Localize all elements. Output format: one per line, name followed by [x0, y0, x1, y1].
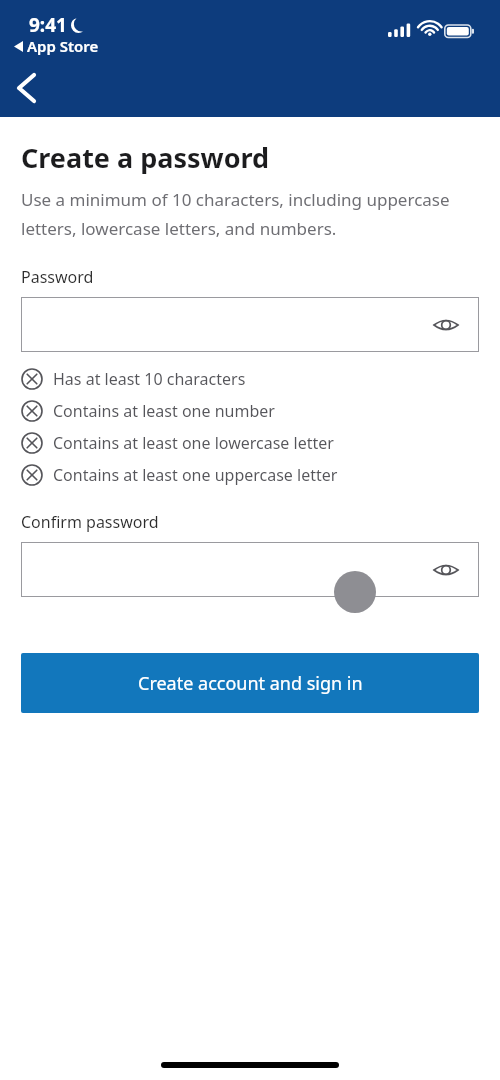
staticText: 9:41	[29, 12, 67, 38]
button[interactable]: Create account and sign in	[21, 653, 479, 713]
staticText: Password	[21, 266, 94, 288]
staticText: App Store	[27, 36, 99, 56]
staticText: Create a password	[21, 139, 270, 176]
button[interactable]: Show password	[426, 305, 466, 345]
button[interactable]: Show password	[426, 550, 466, 590]
button[interactable]: Contains at least one number	[21, 400, 479, 422]
staticText: Use a minimum of 10 characters, includin…	[21, 188, 479, 240]
button[interactable]: Show password	[21, 542, 479, 597]
button[interactable]: Back	[4, 66, 48, 110]
staticText: Contains at least one lowercase letter	[53, 432, 334, 454]
staticText: Contains at least one number	[53, 400, 275, 422]
staticText: Has at least 10 characters	[53, 368, 246, 390]
button[interactable]: Show password	[21, 297, 479, 352]
staticText: Contains at least one uppercase letter	[53, 464, 338, 486]
staticText: Confirm password	[21, 511, 159, 533]
staticText: Create account and sign in	[138, 671, 363, 696]
button[interactable]: Contains at least one uppercase letter	[21, 464, 479, 486]
button[interactable]: Has at least 10 characters	[21, 368, 479, 390]
button[interactable]: Contains at least one lowercase letter	[21, 432, 479, 454]
